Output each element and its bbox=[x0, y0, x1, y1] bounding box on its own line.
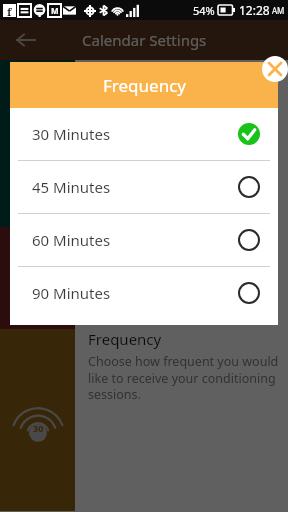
staticText: 60 Minutes bbox=[32, 230, 238, 250]
button[interactable]: 30 Minutes bbox=[10, 108, 278, 160]
button[interactable] bbox=[0, 227, 288, 329]
staticText: Choose how frequent you would like to re… bbox=[88, 353, 280, 402]
button[interactable]: 90 Minutes bbox=[10, 267, 278, 319]
staticText: 30 Minutes bbox=[32, 124, 238, 144]
staticText: AM bbox=[272, 5, 285, 16]
staticText: Frequency bbox=[103, 74, 186, 97]
button[interactable] bbox=[0, 60, 288, 227]
staticText: Frequency bbox=[88, 329, 162, 349]
button[interactable]: Close bbox=[262, 56, 288, 82]
staticText: 30 bbox=[33, 422, 44, 434]
button[interactable]: 30 bbox=[0, 329, 288, 511]
staticText: f bbox=[7, 4, 12, 17]
staticText: Calendar Settings bbox=[82, 30, 207, 50]
button[interactable]: 60 Minutes bbox=[10, 214, 278, 266]
staticText: 45 Minutes bbox=[32, 177, 238, 197]
staticText: M bbox=[51, 5, 59, 16]
staticText: 12:28 bbox=[239, 2, 270, 18]
button[interactable]: Back bbox=[6, 20, 46, 60]
button[interactable]: 45 Minutes bbox=[10, 161, 278, 213]
staticText: 54% bbox=[193, 3, 215, 18]
staticText: 90 Minutes bbox=[32, 283, 238, 303]
